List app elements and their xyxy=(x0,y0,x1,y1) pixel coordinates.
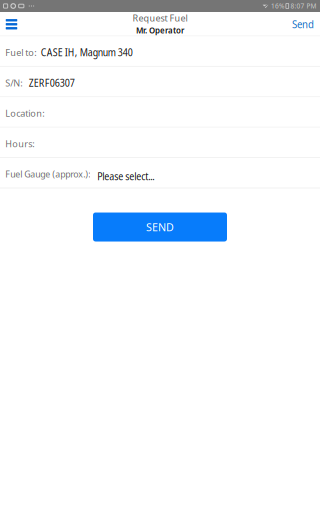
button[interactable]: Hours: xyxy=(0,128,320,158)
button[interactable]: SEND xyxy=(93,212,227,241)
button[interactable]: Fuel Gauge (approx.): xyxy=(0,158,320,188)
staticText: Fuel to: xyxy=(5,46,36,59)
staticText: Fuel Gauge (approx.): xyxy=(5,168,90,180)
staticText: Mr. Operator xyxy=(136,24,184,36)
button[interactable]: S/N: xyxy=(0,67,320,97)
staticText: Send xyxy=(292,17,314,31)
staticText: Please select... xyxy=(97,170,154,183)
staticText: S/N: xyxy=(5,76,22,89)
staticText: ZERF06307 xyxy=(29,76,75,89)
staticText: CASE IH, Magnum 340 xyxy=(41,46,133,59)
staticText: Location: xyxy=(5,107,44,119)
button[interactable]: Menu xyxy=(0,12,23,36)
staticText: SEND xyxy=(146,219,174,235)
staticText: 8:07 PM xyxy=(290,1,316,11)
staticText: Request Fuel xyxy=(132,12,187,24)
staticText: 16% xyxy=(271,1,284,11)
staticText: Hours: xyxy=(5,137,34,150)
button[interactable]: Location: xyxy=(0,97,320,128)
button[interactable]: Fuel to: xyxy=(0,36,320,67)
button[interactable]: Send xyxy=(286,11,320,37)
